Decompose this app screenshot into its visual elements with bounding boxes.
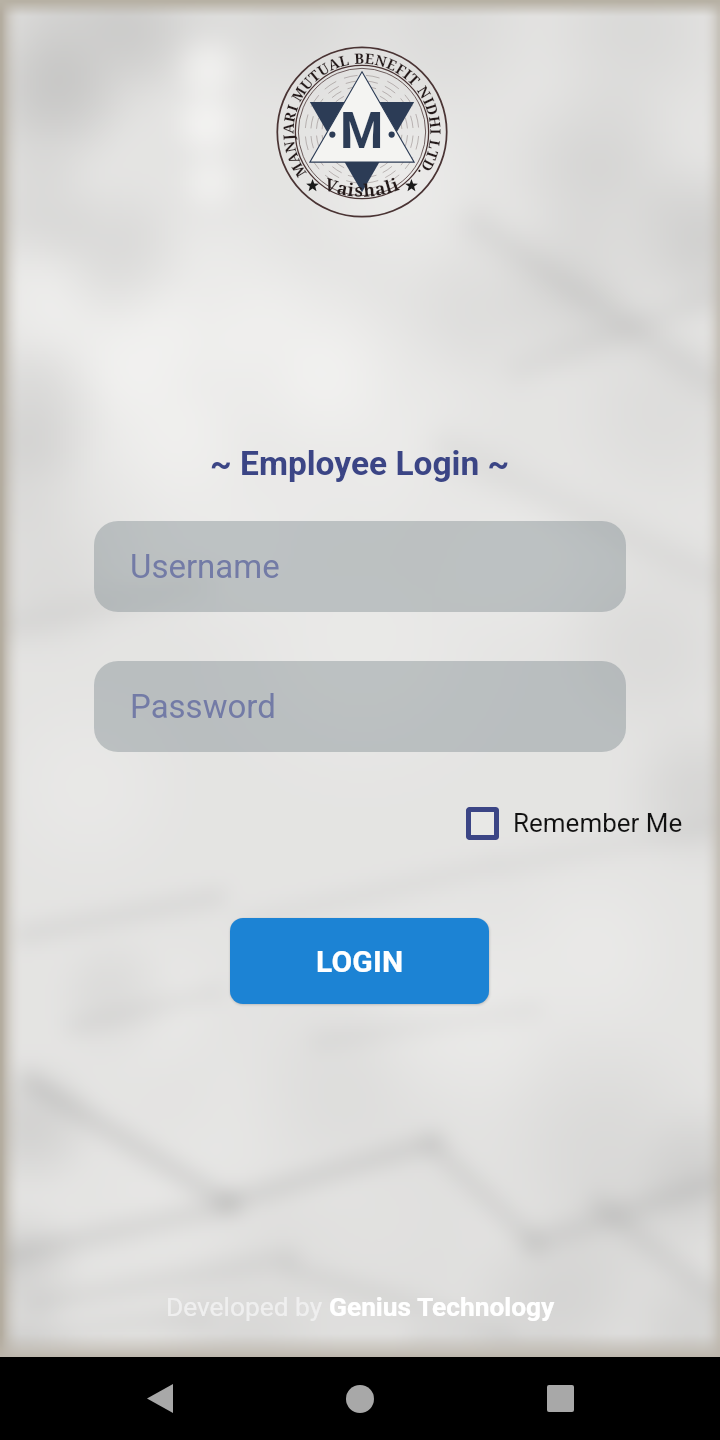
button[interactable]: LOGIN [230, 918, 489, 1004]
button[interactable]: Recent apps [525, 1357, 595, 1440]
button[interactable]: Password [94, 661, 626, 752]
button[interactable]: Username [94, 521, 626, 612]
button[interactable]: Remember Me [466, 799, 683, 847]
button[interactable]: Back [125, 1357, 195, 1440]
staticText: Developed by [166, 1292, 329, 1323]
button[interactable]: Home [325, 1357, 395, 1440]
staticText: Password [130, 687, 276, 726]
staticText: ~ Employee Login ~ [210, 444, 510, 483]
staticText: Remember Me [513, 808, 683, 838]
staticText: Genius Technology [329, 1292, 555, 1323]
staticText: LOGIN [316, 944, 404, 979]
staticText: Username [130, 547, 280, 586]
